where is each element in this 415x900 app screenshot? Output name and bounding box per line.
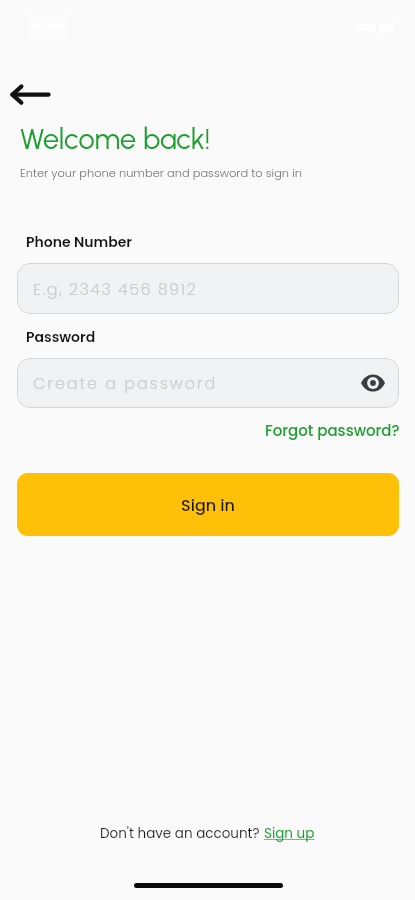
staticText: Create a password	[33, 372, 218, 394]
staticText: Sign up	[264, 824, 315, 843]
staticText: Sign in	[181, 494, 235, 516]
staticText: Forgot password?	[265, 420, 400, 441]
button[interactable]: Create a password	[17, 358, 399, 408]
button[interactable]: Show password	[355, 365, 391, 401]
staticText: Welcome back!	[20, 122, 211, 157]
staticText: E.g, 2343 456 8912	[33, 278, 198, 300]
staticText: Phone Number	[26, 232, 132, 252]
button[interactable]: Forgot password?	[264, 420, 401, 441]
staticText: Enter your phone number and password to …	[20, 165, 302, 181]
button[interactable]: Back	[2, 77, 54, 115]
staticText: Don't have an account?	[100, 824, 264, 843]
staticText: Password	[26, 327, 96, 347]
button[interactable]: Sign in	[17, 473, 399, 536]
button[interactable]: Sign up	[264, 824, 315, 843]
button[interactable]: E.g, 2343 456 8912	[17, 263, 399, 314]
